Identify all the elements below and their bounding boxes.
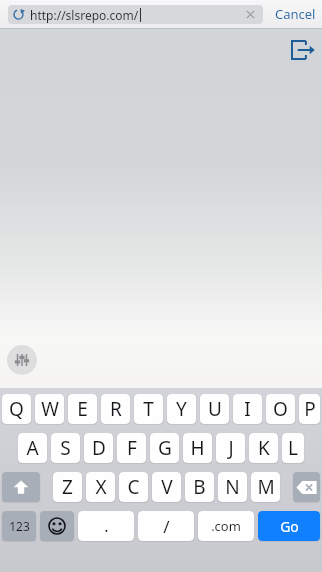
staticText: .com (211, 517, 241, 535)
button[interactable]: K (249, 433, 278, 463)
button[interactable]: 123 (2, 511, 36, 541)
other: Reload (13, 9, 24, 20)
button[interactable]: C (119, 472, 148, 502)
button[interactable]: Go (258, 511, 320, 541)
staticText: V (161, 474, 173, 500)
button[interactable]: L (282, 433, 304, 463)
button[interactable]: Clear text (244, 8, 257, 21)
button[interactable]: S (51, 433, 80, 463)
button[interactable]: . (78, 511, 134, 541)
staticText: T (143, 396, 154, 422)
staticText: B (193, 474, 206, 500)
button[interactable]: X (86, 472, 115, 502)
staticText: O (273, 396, 288, 422)
staticText: F (127, 435, 137, 461)
button[interactable]: N (218, 472, 247, 502)
staticText: U (208, 396, 222, 422)
staticText: M (257, 474, 275, 500)
button[interactable]: A (18, 433, 47, 463)
button[interactable]: B (185, 472, 214, 502)
staticText: L (288, 435, 298, 461)
staticText: C (127, 474, 140, 500)
staticText: http://slsrepo.com/ (30, 7, 139, 23)
button[interactable]: T (134, 394, 163, 424)
button[interactable]: V (152, 472, 181, 502)
button[interactable]: H (183, 433, 212, 463)
button[interactable]: P (299, 394, 320, 424)
staticText: A (26, 435, 39, 461)
button[interactable]: Reload (8, 5, 263, 24)
staticText: . (104, 515, 109, 537)
button[interactable]: / (138, 511, 194, 541)
staticText: J (228, 435, 234, 461)
button[interactable]: R (101, 394, 130, 424)
button[interactable]: F (117, 433, 146, 463)
staticText: G (158, 435, 172, 461)
button[interactable]: Emoji (40, 511, 74, 541)
button[interactable]: W (35, 394, 64, 424)
button[interactable]: Z (53, 472, 82, 502)
staticText: X (95, 474, 107, 500)
button[interactable]: J (216, 433, 245, 463)
button[interactable]: O (266, 394, 295, 424)
staticText: Go (280, 517, 299, 536)
button[interactable]: Y (167, 394, 196, 424)
button[interactable]: Settings (7, 345, 37, 375)
staticText: N (225, 474, 240, 500)
button[interactable]: I (233, 394, 262, 424)
button[interactable]: Cancel (275, 5, 316, 23)
button[interactable]: .com (198, 511, 254, 541)
button[interactable]: Open in new (289, 36, 317, 64)
staticText: S (60, 435, 71, 461)
button[interactable]: Q (2, 394, 31, 424)
button[interactable]: G (150, 433, 179, 463)
staticText: Q (9, 396, 24, 422)
staticText: E (77, 396, 88, 422)
button[interactable]: D (84, 433, 113, 463)
staticText: H (190, 435, 205, 461)
button[interactable]: M (251, 472, 280, 502)
staticText: 123 (9, 518, 30, 534)
staticText: W (41, 396, 59, 422)
staticText: I (244, 396, 251, 422)
button[interactable]: Shift (2, 472, 40, 502)
staticText: Z (62, 474, 73, 500)
button[interactable]: U (200, 394, 229, 424)
staticText: R (110, 396, 122, 422)
staticText: P (304, 396, 316, 422)
staticText: Cancel (275, 5, 316, 23)
staticText: K (258, 435, 270, 461)
staticText: D (92, 435, 106, 461)
staticText: / (163, 515, 170, 538)
button[interactable]: Backspace (293, 472, 320, 502)
staticText: Y (176, 396, 187, 422)
button[interactable]: E (68, 394, 97, 424)
